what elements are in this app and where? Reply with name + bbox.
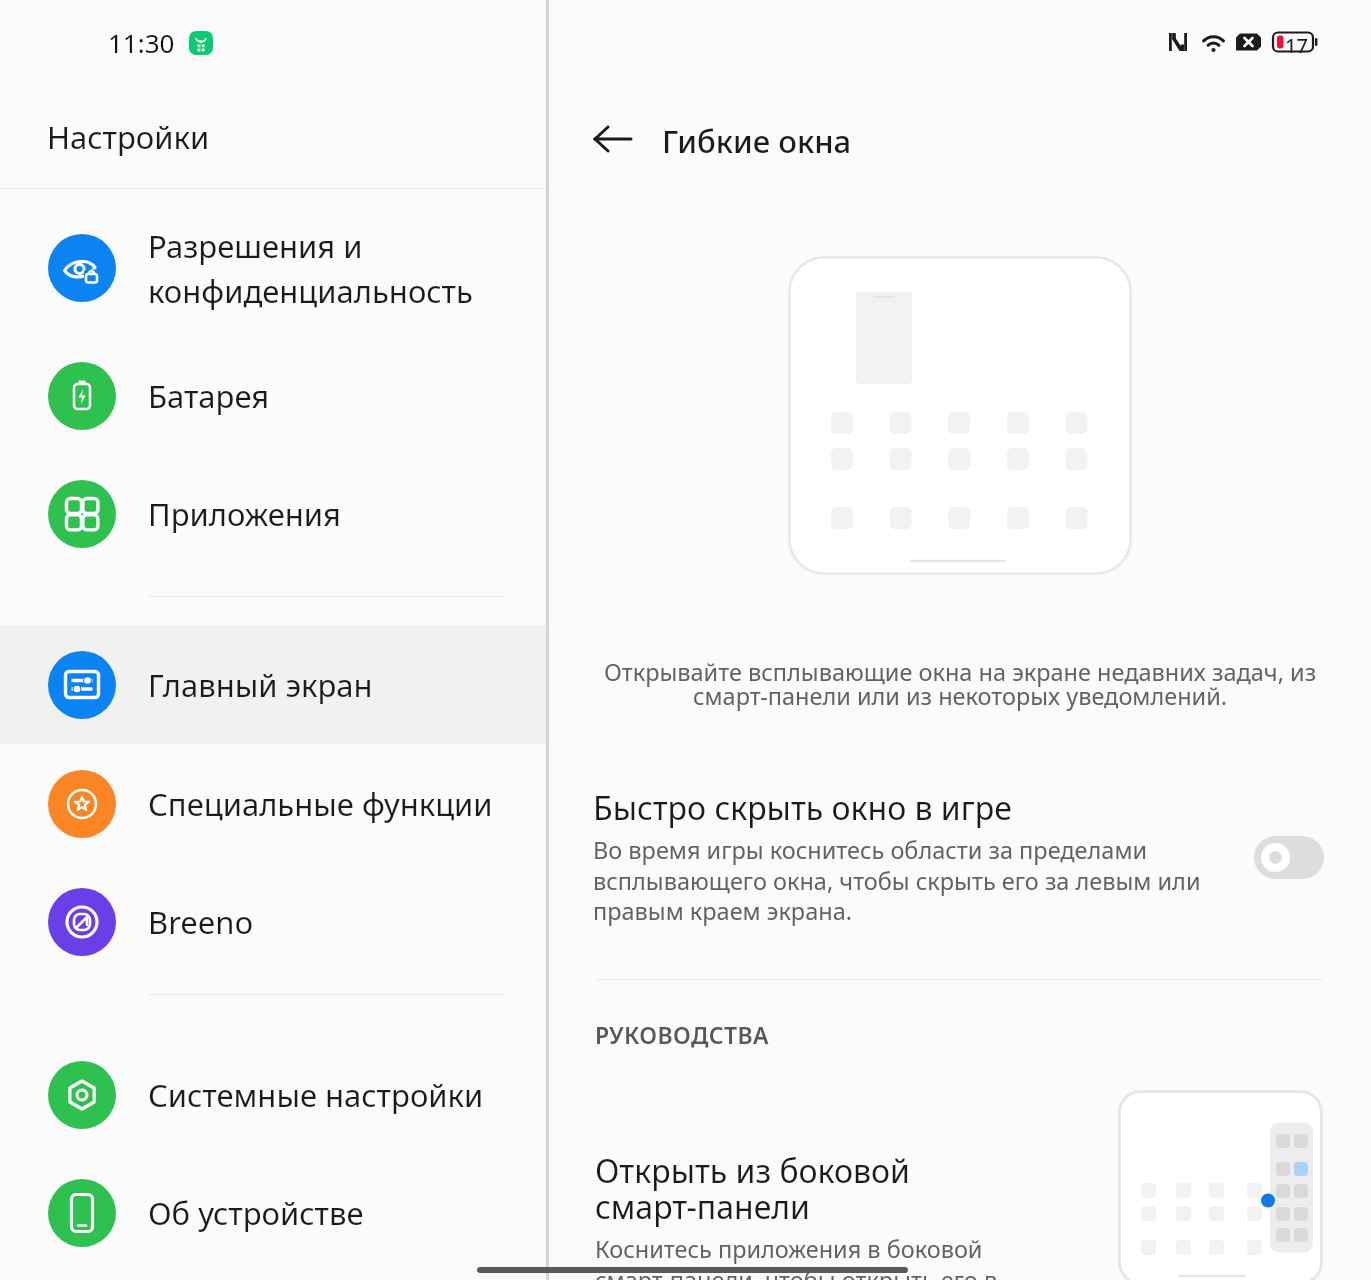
button[interactable]: Быстро скрыть окно в игре: [1254, 836, 1324, 879]
staticText: Breeno: [148, 901, 254, 943]
staticText: 17: [1285, 32, 1308, 59]
button[interactable]: Батарея: [0, 337, 547, 455]
button[interactable]: Быстро скрыть окно в игре: [549, 770, 1371, 945]
staticText: Коснитесь приложения в боковой смарт-пан…: [595, 1233, 998, 1280]
staticText: Батарея: [148, 375, 270, 417]
staticText: Главный экран: [148, 664, 373, 706]
staticText: Открывайте всплывающие окна на экране не…: [579, 656, 1341, 712]
staticText: Гибкие окна: [662, 120, 852, 162]
staticText: Об устройстве: [148, 1192, 364, 1234]
staticText: Приложения: [148, 493, 341, 535]
button[interactable]: Разрешения и конфиденциальность: [0, 209, 547, 327]
staticText: Системные настройки: [148, 1074, 484, 1116]
button[interactable]: Системные настройки: [0, 1036, 547, 1154]
button[interactable]: Об устройстве: [0, 1154, 547, 1272]
staticText: Во время игры коснитесь области за преде…: [593, 834, 1201, 926]
button[interactable]: Открыть из боковой смарт-панели: [549, 1080, 1371, 1280]
staticText: РУКОВОДСТВА: [595, 1019, 769, 1050]
button[interactable]: Главный экран: [0, 626, 547, 744]
button[interactable]: Breeno: [0, 863, 547, 981]
button[interactable]: Приложения: [0, 455, 547, 573]
staticText: Быстро скрыть окно в игре: [593, 786, 1012, 830]
staticText: Настройки: [47, 116, 210, 158]
staticText: 11:30: [108, 25, 175, 60]
staticText: Разрешения и конфиденциальность: [148, 225, 473, 312]
button[interactable]: Специальные функции: [0, 745, 547, 863]
button[interactable]: Назад: [585, 111, 641, 167]
staticText: Открыть из боковой смарт-панели: [595, 1149, 910, 1229]
staticText: Специальные функции: [148, 783, 493, 825]
